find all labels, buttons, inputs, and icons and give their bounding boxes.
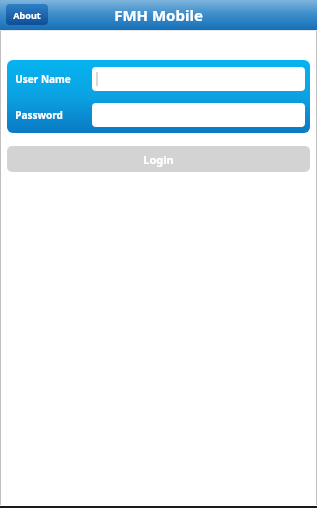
staticText: Login <box>143 152 174 167</box>
staticText: Password <box>15 108 63 122</box>
staticText: User Name <box>15 72 71 86</box>
staticText: FMH Mobile <box>114 5 203 25</box>
button[interactable] <box>92 67 305 91</box>
button[interactable] <box>92 103 305 127</box>
button[interactable]: Login <box>7 146 310 172</box>
button[interactable]: About <box>6 4 48 25</box>
staticText: About <box>13 9 41 21</box>
